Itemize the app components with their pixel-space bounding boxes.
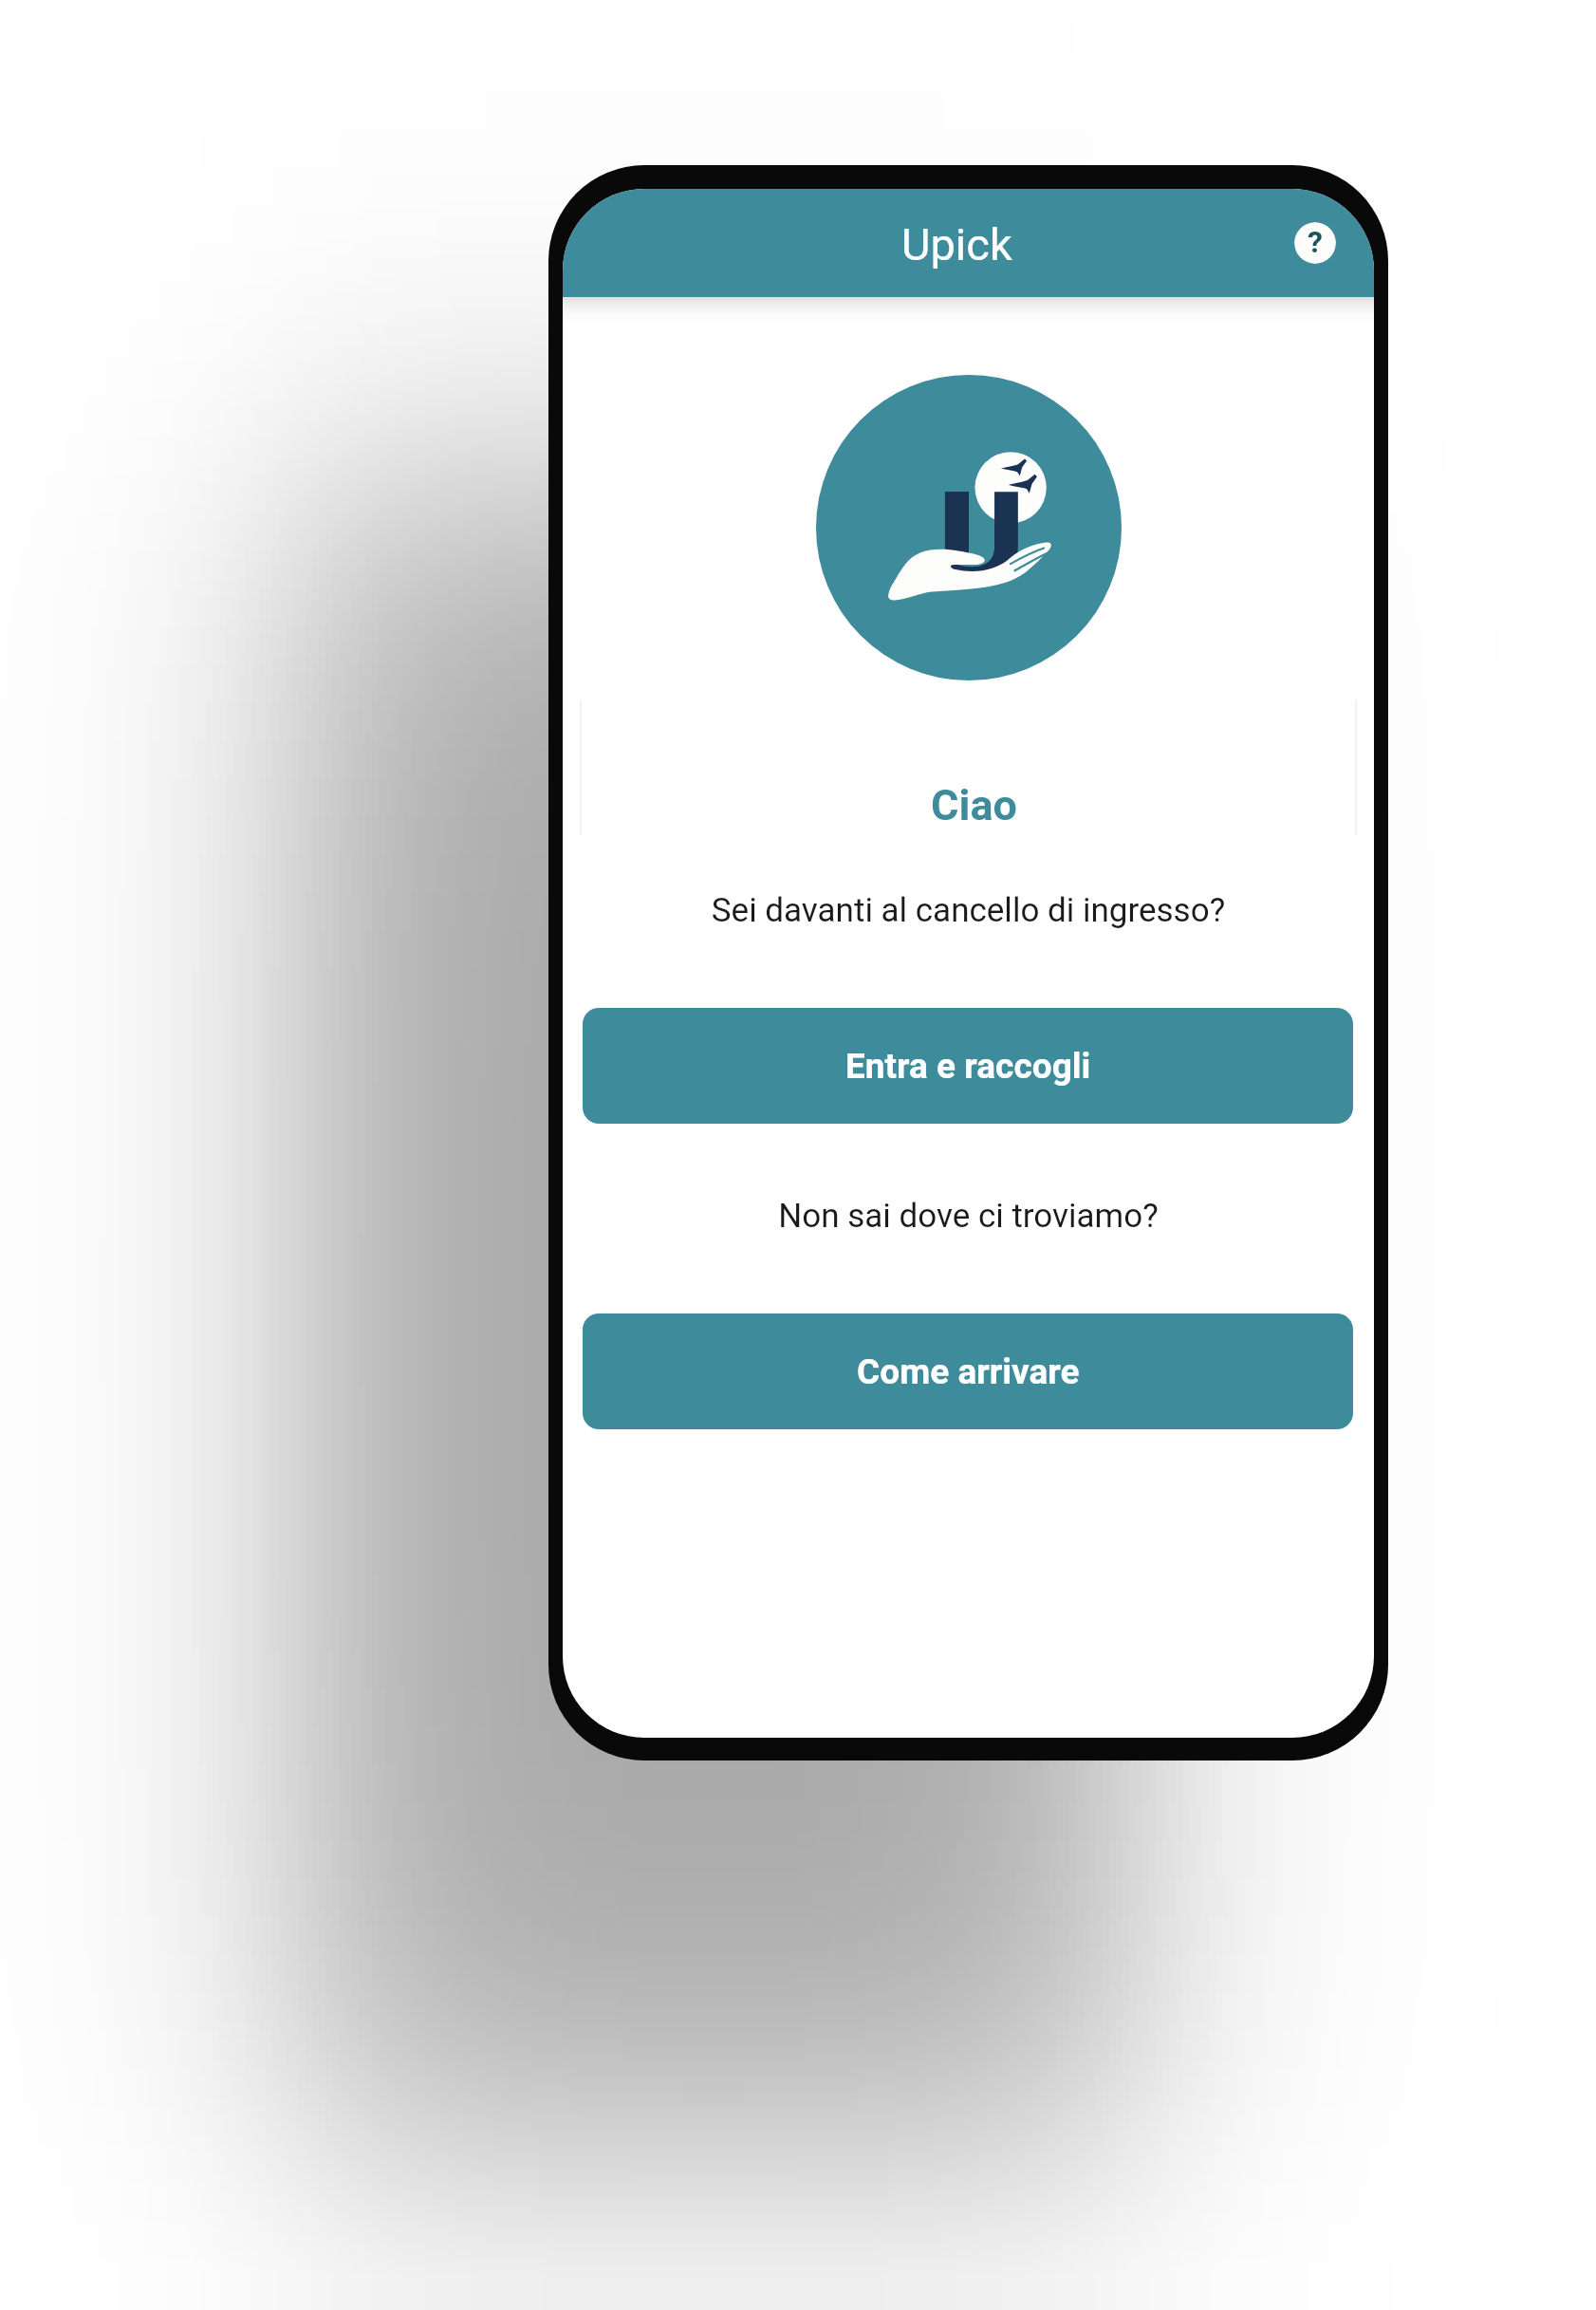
staticText: Non sai dove ci troviamo? (563, 1197, 1374, 1236)
button[interactable]: Come arrivare (583, 1313, 1353, 1429)
staticText: Come arrivare (857, 1351, 1080, 1392)
button[interactable]: Help (1294, 222, 1336, 264)
staticText: Sei davanti al cancello di ingresso? (563, 891, 1374, 930)
staticText: Entra e raccogli (845, 1046, 1091, 1087)
staticText: Ciao (568, 780, 1374, 830)
staticText: ? (1308, 224, 1323, 260)
staticText: Upick (901, 218, 1012, 270)
button[interactable]: Entra e raccogli (583, 1008, 1353, 1124)
